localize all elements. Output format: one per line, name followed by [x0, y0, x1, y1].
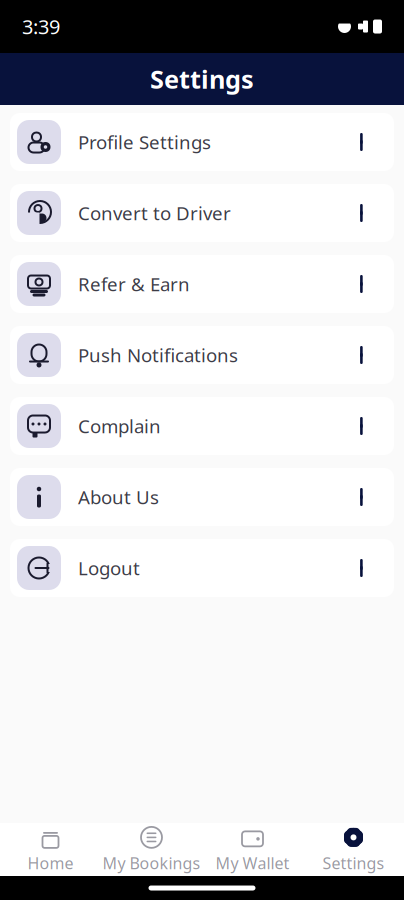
- staticText: Logout: [78, 556, 140, 580]
- staticText: My Wallet: [215, 852, 289, 874]
- button[interactable]: Settings: [303, 823, 404, 876]
- button[interactable]: My Wallet: [202, 823, 303, 876]
- staticText: Convert to Driver: [78, 201, 231, 225]
- staticText: Home: [27, 852, 73, 874]
- button[interactable]: Complain: [10, 397, 394, 455]
- button[interactable]: About Us: [10, 468, 394, 526]
- button[interactable]: Convert to Driver: [10, 184, 394, 242]
- staticText: My Bookings: [102, 852, 200, 874]
- staticText: Complain: [78, 414, 161, 438]
- staticText: Settings: [322, 852, 384, 874]
- staticText: Profile Settings: [78, 130, 211, 154]
- button[interactable]: Refer & Earn: [10, 255, 394, 313]
- button[interactable]: Home: [0, 823, 101, 876]
- staticText: Refer & Earn: [78, 272, 190, 296]
- button[interactable]: Push Notifications: [10, 326, 394, 384]
- button[interactable]: My Bookings: [101, 823, 202, 876]
- staticText: About Us: [78, 485, 159, 509]
- staticText: Settings: [150, 62, 254, 96]
- staticText: 3:39: [22, 13, 60, 40]
- staticText: Push Notifications: [78, 343, 238, 367]
- button[interactable]: Profile Settings: [10, 113, 394, 171]
- button[interactable]: Logout: [10, 539, 394, 597]
